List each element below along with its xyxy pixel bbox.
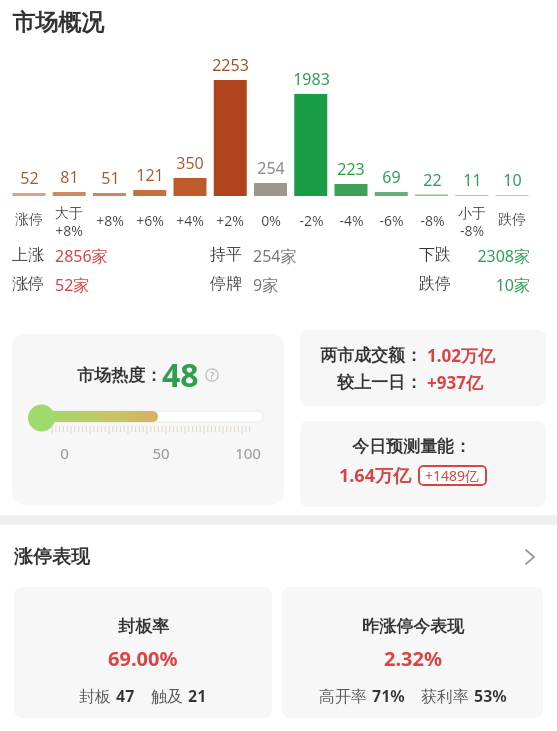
staticText: 121 xyxy=(136,164,164,186)
staticText: 下跌 xyxy=(419,245,451,265)
staticText: -6% xyxy=(379,211,404,230)
staticText: 254家 xyxy=(253,245,297,267)
staticText: 停牌 xyxy=(210,274,242,294)
staticText: -4% xyxy=(339,211,364,230)
staticText: +8% xyxy=(96,211,124,230)
staticText: 较上一日： xyxy=(337,372,422,393)
staticText: 涨停 xyxy=(12,274,44,294)
button[interactable]: 今日预测量能： xyxy=(300,421,546,507)
staticText: 市场概况 xyxy=(12,8,104,37)
staticText: 71% xyxy=(372,685,405,707)
staticText: 小于 -8% xyxy=(458,205,486,240)
staticText: 大于 +8% xyxy=(55,205,83,240)
staticText: 50 xyxy=(152,443,170,463)
staticText: +2% xyxy=(216,211,244,230)
staticText: 1.02万亿 xyxy=(427,344,495,367)
staticText: +6% xyxy=(136,211,164,230)
staticText: +4% xyxy=(176,211,204,230)
staticText: 81 xyxy=(60,166,79,188)
staticText: 223 xyxy=(337,158,365,180)
staticText: 10家 xyxy=(495,274,530,296)
staticText: 22 xyxy=(423,169,442,191)
staticText: 52 xyxy=(20,167,39,189)
staticText: ? xyxy=(210,369,214,381)
staticText: 0% xyxy=(261,211,281,230)
staticText: 69.00% xyxy=(108,645,178,672)
staticText: -8% xyxy=(420,211,445,230)
staticText: 市场热度： xyxy=(77,365,162,386)
staticText: 100 xyxy=(235,443,261,463)
staticText: 上涨 xyxy=(12,245,44,265)
staticText: 跌停 xyxy=(419,274,451,294)
staticText: 11 xyxy=(463,169,482,191)
staticText: 2308家 xyxy=(477,245,530,267)
staticText: 0 xyxy=(60,443,69,463)
staticText: 封板率 xyxy=(118,616,169,637)
button[interactable]: 市场热度： xyxy=(12,334,284,505)
staticText: 跌停 xyxy=(498,211,526,229)
staticText: 1983 xyxy=(293,68,330,90)
staticText: 47 xyxy=(116,685,135,707)
staticText: 254 xyxy=(257,157,285,179)
staticText: 9家 xyxy=(253,274,279,296)
staticText: 52家 xyxy=(55,274,90,296)
staticText: 触及 xyxy=(151,685,188,707)
staticText: 2253 xyxy=(212,54,249,76)
button[interactable]: 涨停表现 xyxy=(0,541,557,573)
staticText: 两市成交额： xyxy=(320,345,422,366)
staticText: 获利率 xyxy=(421,685,474,707)
staticText: 昨涨停今表现 xyxy=(362,616,464,637)
staticText: 2856家 xyxy=(55,245,108,267)
staticText: 21 xyxy=(188,685,207,707)
staticText: 10 xyxy=(503,169,522,191)
staticText: 48 xyxy=(162,353,199,397)
staticText: +937亿 xyxy=(427,371,483,394)
staticText: -2% xyxy=(299,211,324,230)
staticText: 封板 xyxy=(79,685,116,707)
staticText: 350 xyxy=(176,152,204,174)
button[interactable]: 封板率 xyxy=(14,587,272,718)
staticText: 53% xyxy=(474,685,507,707)
button[interactable]: 两市成交额： xyxy=(300,330,546,406)
staticText: 69 xyxy=(382,166,401,188)
staticText: 涨停表现 xyxy=(14,545,90,569)
staticText: 持平 xyxy=(210,245,242,265)
staticText: 高开率 xyxy=(319,685,372,707)
button[interactable]: 昨涨停今表现 xyxy=(282,587,543,718)
staticText: 51 xyxy=(101,167,120,189)
staticText: +1489亿 xyxy=(425,466,480,485)
staticText: 涨停 xyxy=(15,211,43,229)
staticText: 1.64万亿 xyxy=(339,463,411,488)
staticText: 今日预测量能： xyxy=(352,436,471,457)
staticText: 2.32% xyxy=(384,645,442,672)
